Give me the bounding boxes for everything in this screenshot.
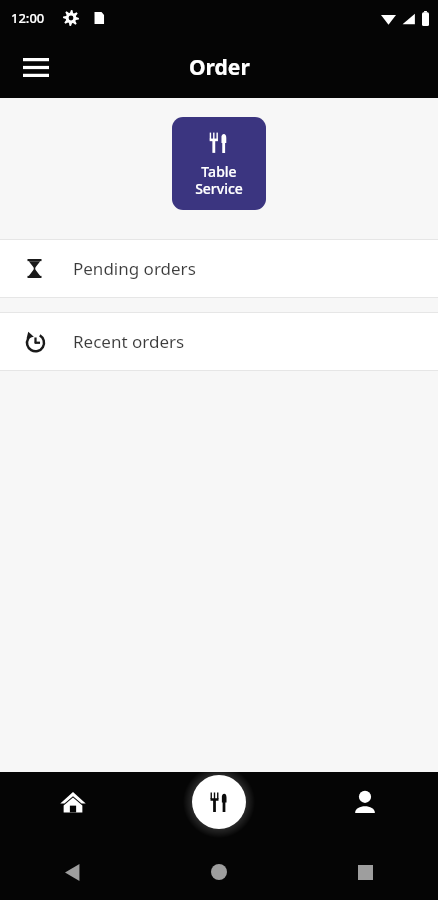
button[interactable]: Pending orders <box>0 240 438 297</box>
button[interactable]: Home <box>0 772 146 844</box>
staticText: Table Service <box>195 162 243 198</box>
staticText: Order <box>189 53 250 82</box>
button[interactable]: Profile <box>292 772 438 844</box>
button[interactable]: Table Service <box>172 117 266 210</box>
staticText: Recent orders <box>73 330 185 353</box>
button[interactable]: Recent orders <box>0 313 438 370</box>
button[interactable]: Open navigation menu <box>12 43 60 91</box>
staticText: 12:00 <box>11 9 45 27</box>
staticText: Pending orders <box>73 257 196 280</box>
button[interactable]: Order <box>146 772 292 844</box>
